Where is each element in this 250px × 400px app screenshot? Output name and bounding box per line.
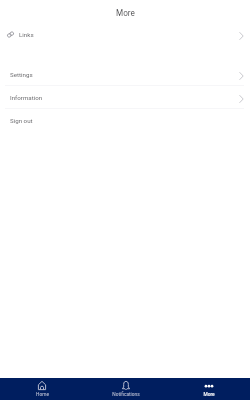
staticText: Notifications [112,392,140,398]
button[interactable]: More [167,378,250,400]
button[interactable]: Information [0,86,250,108]
button[interactable]: Home [0,378,84,400]
button[interactable]: Notifications [84,378,167,400]
staticText: Links [19,31,34,38]
button[interactable]: Links [0,23,250,45]
button[interactable]: Settings [0,63,250,85]
button[interactable]: Sign out [0,109,250,131]
staticText: Sign out [10,117,33,124]
staticText: Home [36,392,49,398]
staticText: More [116,8,135,18]
staticText: More [203,392,215,398]
staticText: Information [10,94,43,101]
staticText: Settings [10,71,33,78]
